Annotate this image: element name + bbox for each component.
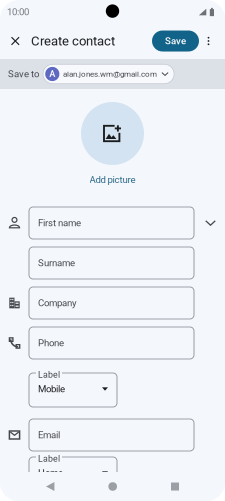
staticText: Surname xyxy=(38,257,75,269)
staticText: Label xyxy=(38,369,60,380)
staticText: Email xyxy=(38,429,60,441)
button[interactable]: A xyxy=(43,64,174,84)
button[interactable]: Company xyxy=(29,287,194,319)
button[interactable]: Mobile xyxy=(29,373,117,407)
button[interactable]: First name xyxy=(29,207,194,239)
staticText: Phone xyxy=(38,337,64,349)
button[interactable]: Home xyxy=(29,457,117,491)
staticText: Create contact xyxy=(31,33,115,49)
button[interactable]: Surname xyxy=(29,247,194,279)
staticText: Add picture xyxy=(89,174,135,185)
button[interactable]: Close xyxy=(4,30,26,52)
staticText: alan.jones.wm@gmail.com xyxy=(63,69,157,79)
staticText: A xyxy=(49,68,55,79)
button[interactable]: More options xyxy=(199,30,218,52)
staticText: 10:00 xyxy=(7,6,29,18)
button[interactable]: Home xyxy=(100,474,125,499)
staticText: Label xyxy=(38,453,60,464)
staticText: Save xyxy=(165,35,186,47)
staticText: Company xyxy=(38,297,77,309)
button[interactable]: Recent apps xyxy=(163,474,187,498)
staticText: Save to xyxy=(8,68,39,80)
staticText: Home xyxy=(38,467,63,479)
button[interactable]: Save xyxy=(152,30,199,51)
staticText: Mobile xyxy=(38,383,65,395)
button[interactable]: Back xyxy=(38,474,62,499)
button[interactable]: More name fields xyxy=(194,207,225,239)
button[interactable]: Phone xyxy=(29,327,194,359)
button[interactable]: Email xyxy=(29,419,194,451)
button[interactable]: Add picture xyxy=(81,102,144,185)
staticText: First name xyxy=(38,217,81,229)
